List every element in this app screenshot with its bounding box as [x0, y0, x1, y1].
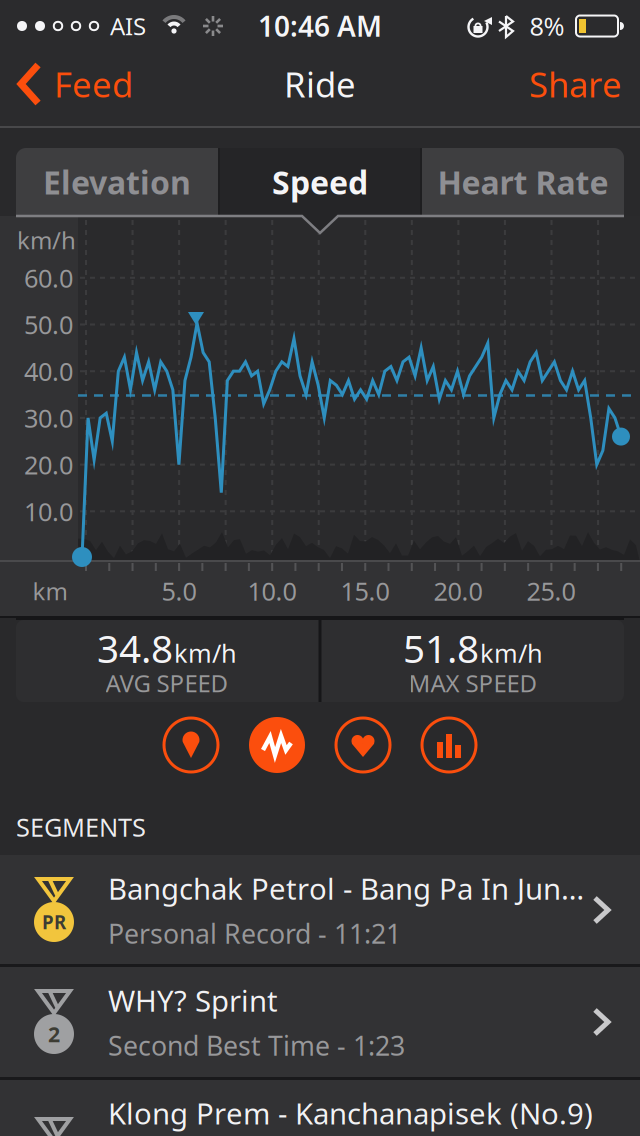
staticText: Second Best Time - 1:23 — [108, 1028, 405, 1063]
button[interactable]: Heart rate — [336, 718, 390, 772]
staticText: Elevation — [43, 161, 191, 203]
staticText: 10:46 AM — [258, 7, 382, 45]
staticText: WHY? Sprint — [108, 981, 278, 1020]
staticText: 2 — [48, 1020, 60, 1048]
button[interactable]: Share — [482, 40, 622, 128]
button[interactable]: Analysis — [422, 718, 476, 772]
staticText: PR — [42, 910, 66, 934]
staticText: 5.0 — [161, 574, 196, 608]
staticText: AIS — [110, 10, 146, 42]
staticText: 10.0 — [24, 494, 73, 528]
button[interactable]: Back to Feed — [14, 40, 164, 128]
staticText: Personal Record - 11:21 — [108, 916, 401, 951]
staticText: 51.8 — [403, 622, 479, 674]
staticText: 8% — [529, 9, 564, 43]
staticText: km/h — [480, 636, 543, 670]
staticText: 25.0 — [526, 574, 575, 608]
staticText: Klong Prem - Kanchanapisek (No.9) — [108, 1093, 593, 1132]
staticText: 20.0 — [433, 574, 482, 608]
staticText: km — [32, 575, 67, 607]
staticText: 10.0 — [247, 574, 296, 608]
staticText: 30.0 — [24, 401, 73, 435]
button[interactable]: Speed — [249, 717, 305, 773]
button[interactable]: Elevation profile — [164, 718, 218, 772]
staticText: 50.0 — [24, 308, 73, 341]
staticText: 60.0 — [24, 261, 73, 295]
staticText: 15.0 — [340, 574, 389, 608]
button[interactable]: 3 — [0, 1080, 640, 1136]
staticText: 40.0 — [24, 354, 73, 388]
staticText: AVG SPEED — [105, 667, 228, 699]
staticText: Feed — [54, 61, 133, 107]
staticText: Share — [529, 61, 622, 107]
button[interactable]: Heart Rate — [422, 148, 624, 216]
staticText: 20.0 — [24, 448, 73, 481]
staticText: Heart Rate — [437, 161, 608, 203]
staticText: Ride — [284, 61, 356, 107]
staticText: km/h — [174, 636, 237, 670]
staticText: 34.8 — [97, 622, 173, 674]
staticText: Speed — [272, 161, 368, 203]
staticText: Bangchak Petrol - Bang Pa In Jun… — [108, 869, 584, 908]
button[interactable]: 2 — [0, 967, 640, 1077]
staticText: MAX SPEED — [408, 667, 537, 699]
staticText: km/h — [17, 224, 76, 256]
button[interactable]: PR — [0, 855, 640, 965]
button[interactable]: Elevation — [16, 148, 218, 216]
button[interactable]: Speed — [219, 148, 421, 216]
staticText: SEGMENTS — [16, 810, 146, 844]
